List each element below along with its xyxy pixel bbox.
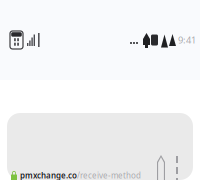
staticText: /receive-method: [77, 170, 141, 180]
button[interactable]: More options: [176, 156, 178, 179]
button[interactable]: Share page: [157, 155, 165, 180]
staticText: 9:41: [178, 34, 196, 46]
staticText: pmxchange.co: [20, 170, 77, 180]
